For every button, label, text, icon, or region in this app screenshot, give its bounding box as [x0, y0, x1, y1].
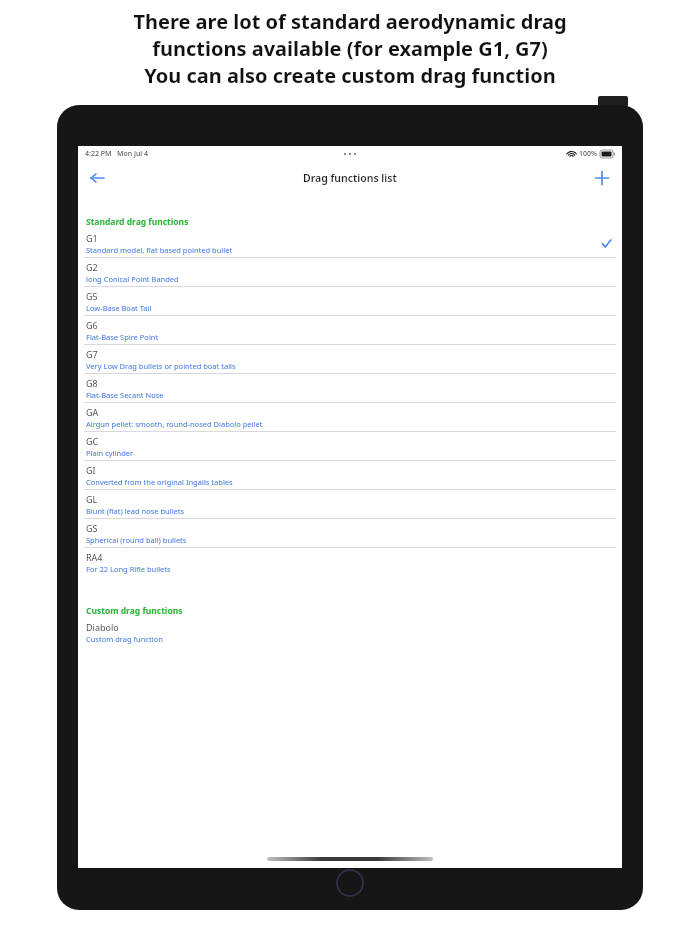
button[interactable]: RA4: [84, 548, 616, 576]
button[interactable]: Diabolo: [84, 618, 616, 646]
staticText: Mon Jul 4: [117, 149, 149, 159]
staticText: Low-Base Boat Tail: [86, 303, 152, 313]
staticText: Flat-Base Spire Point: [86, 332, 159, 342]
staticText: G6: [86, 319, 98, 331]
staticText: GA: [86, 406, 99, 418]
staticText: Flat-Base Secant Nose: [86, 390, 164, 400]
staticText: Standard model, flat based pointed bulle…: [86, 245, 233, 255]
staticText: G2: [86, 261, 98, 273]
staticText: For 22 Long Rifle bullets: [86, 564, 171, 574]
staticText: G1: [86, 232, 98, 244]
button[interactable]: G8: [84, 374, 616, 402]
button[interactable]: G7: [84, 345, 616, 373]
staticText: RA4: [86, 551, 103, 563]
staticText: Airgun pellet: smooth, round-nosed Diabo…: [86, 419, 263, 429]
staticText: long Conical Point Banded: [86, 274, 179, 284]
button[interactable]: Add drag function: [587, 163, 617, 193]
staticText: G5: [86, 290, 98, 302]
staticText: Plain cylinder: [86, 448, 134, 458]
button[interactable]: G2: [84, 258, 616, 286]
staticText: 100%: [579, 149, 597, 159]
staticText: Diabolo: [86, 621, 119, 633]
staticText: Custom drag functions: [86, 605, 183, 617]
staticText: Very Low Drag bullets or pointed boat ta…: [86, 361, 236, 371]
button[interactable]: GI: [84, 461, 616, 489]
button[interactable]: GS: [84, 519, 616, 547]
staticText: GI: [86, 464, 96, 476]
button[interactable]: G5: [84, 287, 616, 315]
staticText: GL: [86, 493, 98, 505]
button[interactable]: G6: [84, 316, 616, 344]
staticText: Custom drag function: [86, 634, 163, 644]
staticText: There are lot of standard aerodynamic dr…: [133, 8, 567, 35]
button[interactable]: Back: [82, 163, 112, 193]
staticText: Blunt (flat) lead nose bullets: [86, 506, 185, 516]
button[interactable]: GC: [84, 432, 616, 460]
staticText: functions available (for example G1, G7): [152, 35, 548, 62]
staticText: 4:22 PM: [85, 149, 112, 159]
staticText: Converted from the original Ingalls tabl…: [86, 477, 233, 487]
staticText: Drag functions list: [303, 171, 397, 185]
button[interactable]: GA: [84, 403, 616, 431]
staticText: GC: [86, 435, 99, 447]
button[interactable]: G1: [84, 229, 616, 257]
button[interactable]: GL: [84, 490, 616, 518]
staticText: GS: [86, 522, 98, 534]
staticText: G8: [86, 377, 98, 389]
staticText: You can also create custom drag function: [144, 62, 556, 89]
staticText: Spherical (round ball) bullets: [86, 535, 187, 545]
staticText: Standard drag functions: [86, 216, 189, 228]
staticText: G7: [86, 348, 98, 360]
